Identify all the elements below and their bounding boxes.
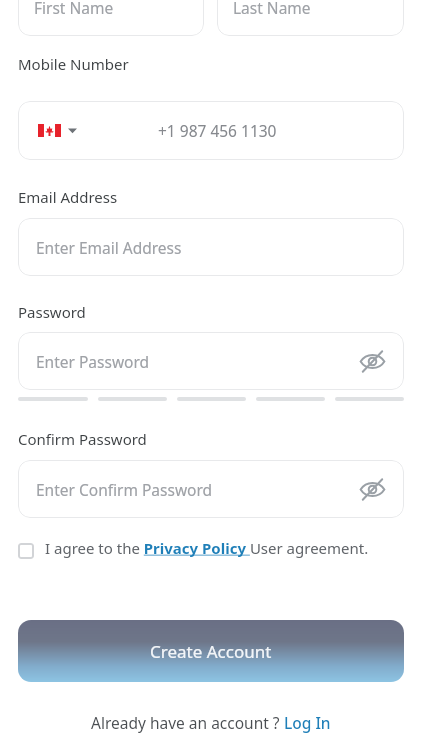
staticText: Enter Email Address [36, 237, 182, 258]
button[interactable]: Log In [284, 712, 331, 733]
button[interactable]: Show confirm password [356, 473, 388, 505]
staticText: I agree to the Privacy Policy User agree… [45, 538, 369, 558]
staticText: +1 987 456 1130 [158, 120, 277, 141]
staticText: Already have an account ? [91, 712, 284, 733]
button[interactable]: Enter Email Address [18, 218, 404, 276]
staticText: Log In [284, 712, 331, 733]
button[interactable]: Enter Password [18, 332, 404, 390]
staticText: First Name [34, 0, 114, 18]
staticText: Last Name [233, 0, 311, 18]
staticText: Email Address [18, 187, 118, 207]
button[interactable]: I agree to the Privacy Policy User agree… [18, 538, 380, 558]
button[interactable]: Show password [356, 345, 388, 377]
button[interactable]: Create Account [18, 620, 404, 682]
staticText: Create Account [150, 640, 272, 663]
staticText: Confirm Password [18, 429, 147, 449]
staticText: Enter Confirm Password [36, 479, 213, 500]
button[interactable]: Last Name [217, 0, 404, 36]
staticText: Password [18, 302, 86, 322]
button[interactable]: Enter Confirm Password [18, 460, 404, 518]
button[interactable]: +1 987 456 1130 [18, 101, 404, 160]
staticText: Enter Password [36, 351, 150, 372]
staticText: Mobile Number [18, 54, 129, 74]
button[interactable]: First Name [18, 0, 204, 36]
